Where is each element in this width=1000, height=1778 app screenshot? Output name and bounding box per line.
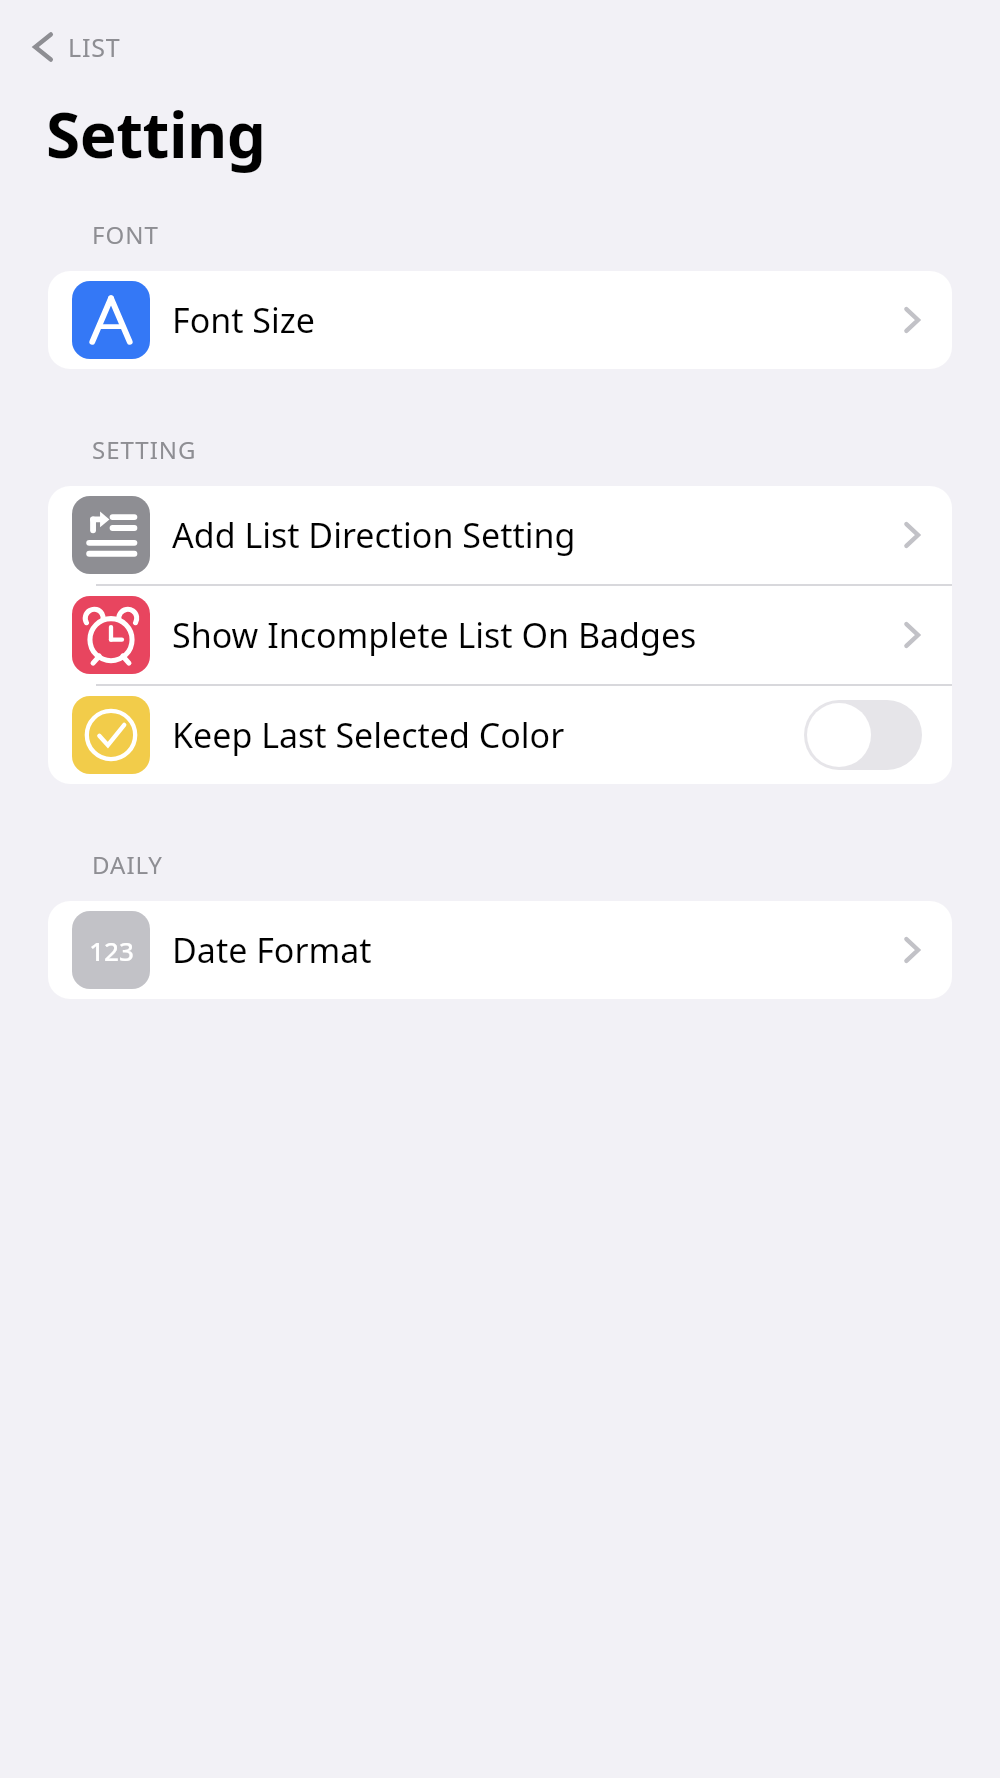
staticText: Date Format bbox=[172, 927, 372, 973]
other: Open bbox=[902, 518, 922, 552]
button[interactable]: Font Size bbox=[48, 271, 952, 369]
staticText: DAILY bbox=[92, 848, 163, 881]
button[interactable]: Add List Direction Setting bbox=[48, 486, 952, 584]
button[interactable]: Keep Last Selected Color bbox=[48, 686, 952, 784]
staticText: 123 bbox=[89, 933, 134, 968]
staticText: Setting bbox=[46, 92, 266, 176]
button[interactable]: Back to LIST bbox=[22, 22, 129, 72]
staticText: SETTING bbox=[92, 433, 197, 466]
other: Open bbox=[902, 618, 922, 652]
other: Open bbox=[902, 933, 922, 967]
staticText: Add List Direction Setting bbox=[172, 512, 576, 558]
button[interactable]: Show Incomplete List On Badges bbox=[48, 586, 952, 684]
staticText: Keep Last Selected Color bbox=[172, 712, 565, 758]
button[interactable]: 123 bbox=[48, 901, 952, 999]
staticText: Font Size bbox=[172, 297, 315, 343]
other: Open bbox=[902, 303, 922, 337]
button[interactable]: Keep Last Selected Color toggle bbox=[804, 700, 922, 770]
staticText: FONT bbox=[92, 218, 159, 251]
staticText: LIST bbox=[68, 30, 121, 64]
staticText: Show Incomplete List On Badges bbox=[172, 612, 697, 658]
